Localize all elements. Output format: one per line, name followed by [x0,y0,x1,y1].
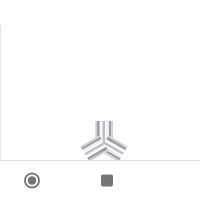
button[interactable]: Record [21,169,43,191]
button[interactable]: Stop [96,169,118,191]
